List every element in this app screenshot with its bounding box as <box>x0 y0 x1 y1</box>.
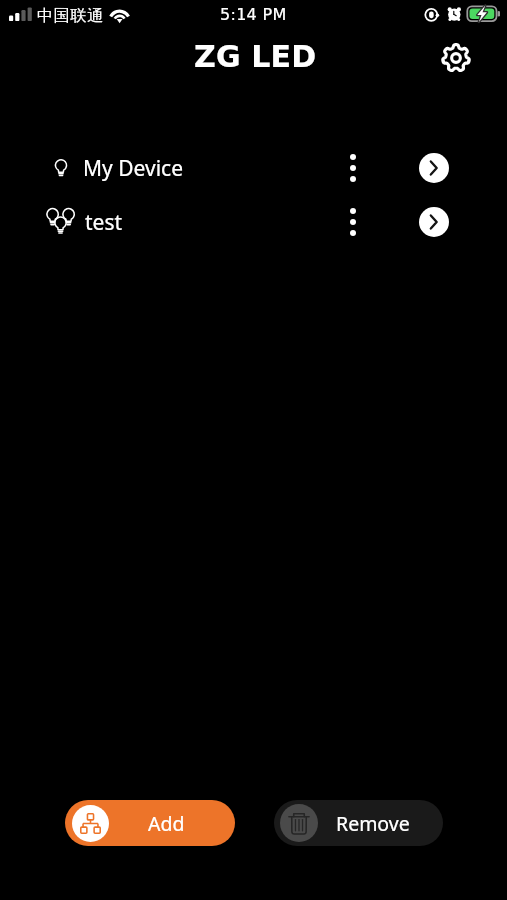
staticText: Remove <box>336 810 410 837</box>
button[interactable]: More options for My Device <box>334 149 372 187</box>
button[interactable]: Remove device <box>274 800 443 846</box>
button[interactable]: Add device <box>65 800 235 846</box>
staticText: My Device <box>83 154 183 183</box>
staticText: 5:14 PM <box>220 5 287 24</box>
button[interactable]: My Device <box>0 141 507 195</box>
staticText: 中国联通 <box>37 6 104 26</box>
staticText: test <box>85 208 123 237</box>
staticText: Add <box>148 810 185 837</box>
button[interactable]: Open My Device <box>419 153 449 183</box>
button[interactable]: Settings <box>438 40 474 76</box>
button[interactable]: More options for test <box>334 203 372 241</box>
staticText: ZG LED <box>194 39 317 74</box>
button[interactable]: Open test <box>419 207 449 237</box>
button[interactable]: test <box>0 195 507 249</box>
